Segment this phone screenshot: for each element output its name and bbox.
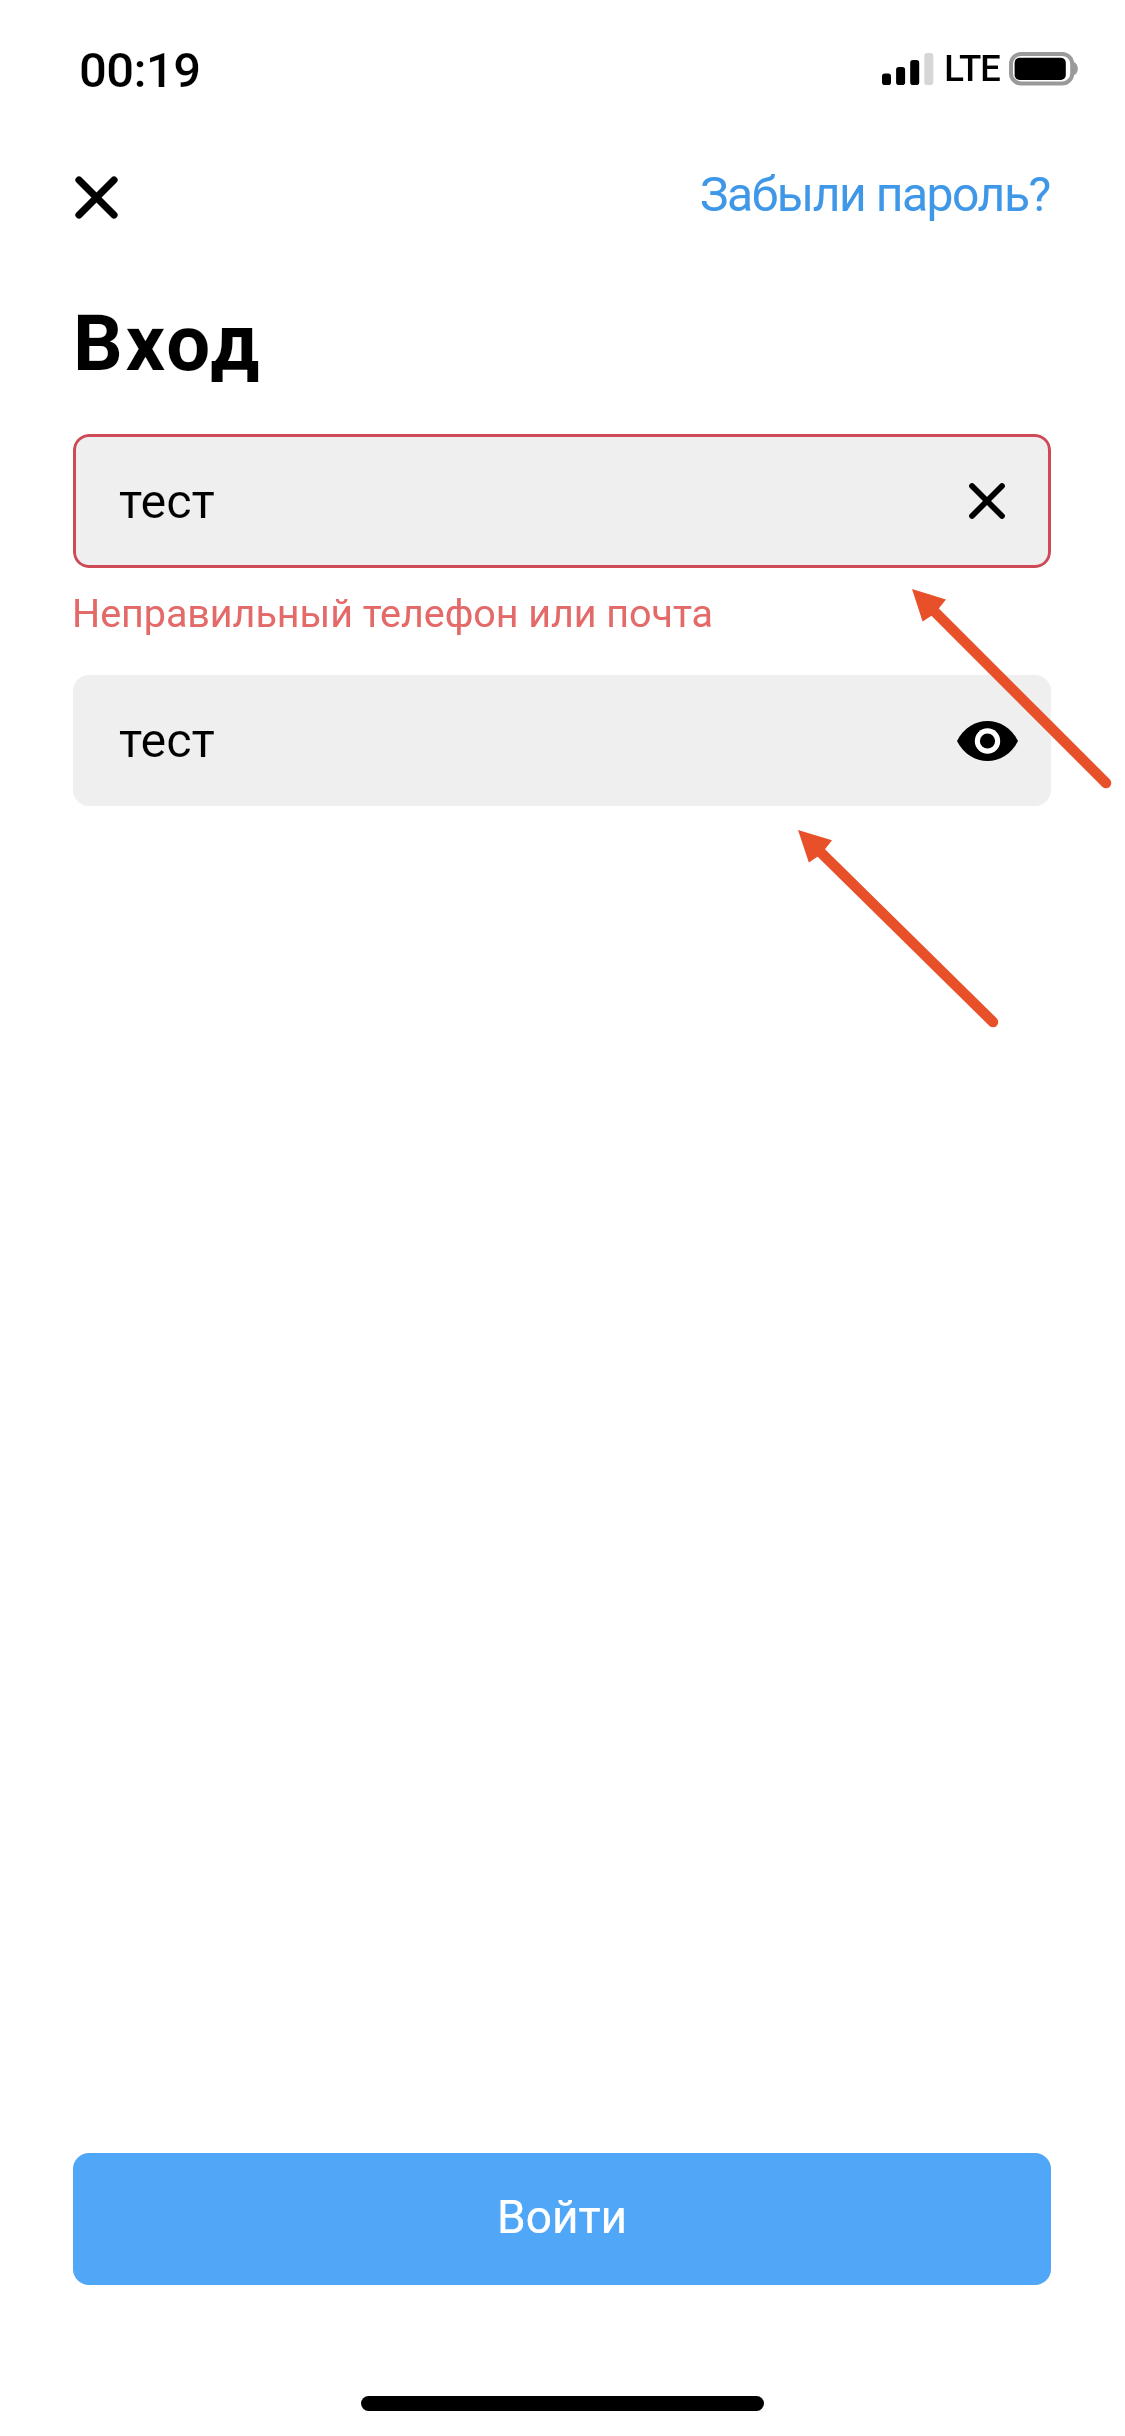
button[interactable]: тест: [73, 675, 1051, 806]
button[interactable]: Войти: [73, 2153, 1051, 2285]
staticText: Забыли пароль?: [700, 166, 1050, 222]
staticText: LTE: [944, 47, 1000, 90]
staticText: Неправильный телефон или почта: [72, 590, 713, 636]
button[interactable]: Clear text: [951, 465, 1023, 537]
button[interactable]: Close: [36, 137, 157, 258]
button[interactable]: тест: [73, 434, 1051, 568]
button[interactable]: Show password: [948, 702, 1026, 780]
staticText: 00:19: [79, 42, 201, 99]
staticText: тест: [119, 712, 215, 769]
staticText: тест: [119, 473, 215, 530]
button[interactable]: Забыли пароль?: [678, 138, 1072, 250]
staticText: Вход: [73, 298, 263, 389]
staticText: Войти: [497, 2190, 628, 2244]
